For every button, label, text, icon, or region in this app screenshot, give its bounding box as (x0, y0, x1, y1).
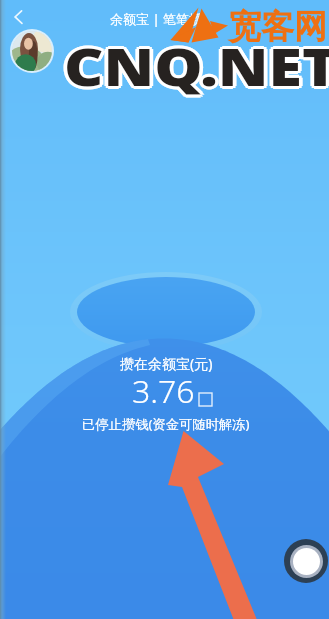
staticText: CNQ.NET (66, 32, 329, 103)
button[interactable]: Profile photo (10, 29, 54, 73)
staticText: CNQ.NET (60, 30, 329, 101)
staticText: 攒在余额宝(元) (120, 354, 213, 373)
staticText: 3.76 (132, 369, 195, 413)
staticText: 宽客网 (228, 6, 327, 48)
button[interactable]: Customer service (284, 539, 328, 583)
staticText: 余额宝 | 笔笔攒 (110, 10, 202, 28)
staticText: CNQ.NET (62, 32, 329, 103)
staticText: 已停止攒钱(资金可随时解冻) (82, 415, 250, 433)
staticText: CNQ.NET (64, 30, 329, 101)
staticText: CNQ.NET (64, 33, 329, 104)
staticText: CNQ.NET (62, 28, 329, 99)
button[interactable]: Back (3, 2, 33, 32)
staticText: CNQ.NET (66, 28, 329, 99)
staticText: CNQ.NET (64, 27, 329, 98)
staticText: CNQ.NET (67, 30, 329, 101)
